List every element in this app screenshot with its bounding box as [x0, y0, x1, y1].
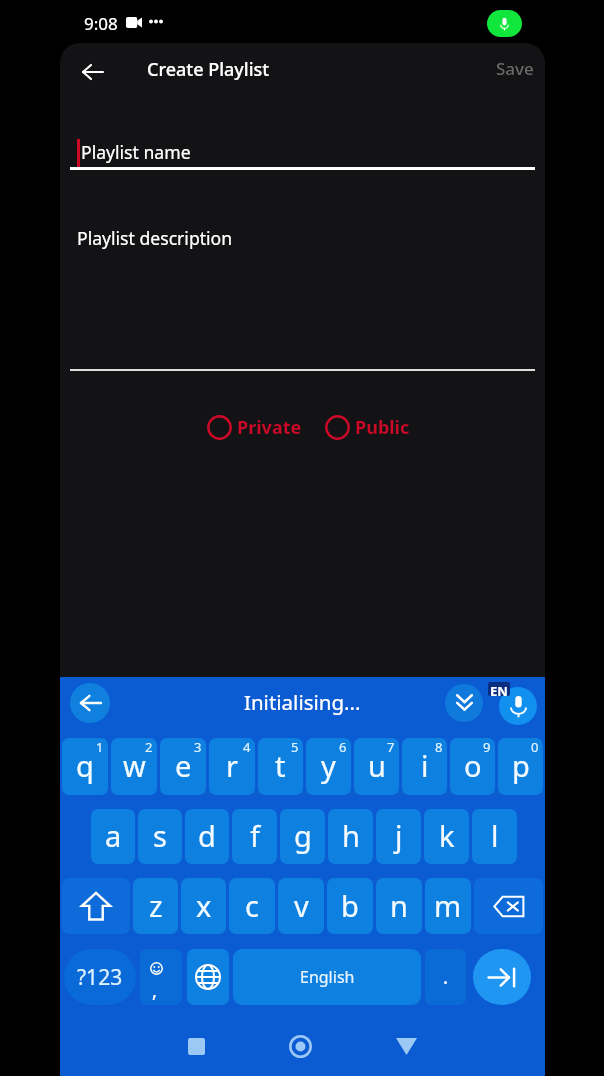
staticText: u	[368, 746, 386, 785]
staticText: o	[464, 746, 482, 785]
staticText: w	[123, 746, 146, 785]
button[interactable]: c	[229, 878, 275, 934]
button[interactable]: ?123	[64, 949, 136, 1005]
staticText: ,	[152, 977, 158, 1003]
button[interactable]: Emoji	[140, 949, 182, 1005]
staticText: .	[443, 964, 449, 990]
staticText: d	[198, 816, 216, 855]
button[interactable]: u	[354, 738, 399, 795]
staticText: t	[275, 746, 286, 785]
button[interactable]: l	[472, 809, 517, 864]
button[interactable]: Enter	[473, 949, 531, 1005]
button[interactable]: o	[450, 738, 495, 795]
button[interactable]: i	[402, 738, 447, 795]
button[interactable]: Back	[70, 683, 110, 723]
button[interactable]: Public	[325, 415, 410, 440]
button[interactable]: .	[425, 949, 466, 1005]
staticText: EN	[490, 682, 508, 696]
staticText: r	[226, 746, 238, 785]
staticText: s	[153, 816, 167, 855]
staticText: 7	[387, 738, 395, 756]
button[interactable]: v	[278, 878, 324, 934]
button[interactable]: d	[185, 809, 229, 864]
button[interactable]: h	[328, 809, 373, 864]
button[interactable]: b	[327, 878, 373, 934]
button[interactable]: p	[498, 738, 543, 795]
button[interactable]: Back	[383, 1023, 430, 1070]
staticText: 3	[194, 738, 202, 756]
button[interactable]: Voice input	[499, 687, 537, 725]
staticText: g	[294, 816, 312, 855]
staticText: f	[250, 816, 260, 855]
button[interactable]: Home	[277, 1023, 324, 1070]
button[interactable]: Shift	[62, 878, 130, 934]
staticText: q	[76, 746, 94, 785]
button[interactable]: j	[376, 809, 421, 864]
button[interactable]: n	[376, 878, 422, 934]
staticText: e	[175, 746, 192, 785]
staticText: p	[512, 746, 530, 785]
staticText: y	[321, 746, 336, 785]
button[interactable]: e	[160, 738, 206, 795]
staticText: 1	[96, 738, 104, 756]
staticText: 5	[291, 738, 299, 756]
staticText: Playlist description	[77, 226, 233, 250]
staticText: 9	[483, 738, 491, 756]
button[interactable]: Recents	[173, 1023, 220, 1070]
button[interactable]: Backspace	[474, 878, 543, 934]
staticText: v	[294, 886, 309, 925]
button[interactable]: Private	[207, 415, 302, 440]
staticText: x	[196, 886, 212, 925]
staticText: Private	[237, 415, 302, 440]
staticText: Playlist name	[81, 140, 191, 164]
staticText: l	[491, 816, 499, 855]
staticText: k	[439, 816, 455, 855]
button[interactable]: g	[280, 809, 325, 864]
button[interactable]: r	[209, 738, 255, 795]
staticText: 0	[531, 738, 539, 756]
staticText: Initialising...	[244, 688, 361, 716]
button[interactable]: q	[62, 738, 108, 795]
button[interactable]: f	[232, 809, 277, 864]
button[interactable]: m	[425, 878, 471, 934]
staticText: i	[421, 746, 429, 785]
staticText: 9:08	[84, 12, 118, 35]
staticText: h	[342, 816, 360, 855]
button[interactable]: s	[138, 809, 182, 864]
button[interactable]: English	[233, 949, 421, 1005]
staticText: a	[105, 816, 122, 855]
staticText: ?123	[77, 963, 123, 992]
staticText: c	[245, 886, 259, 925]
staticText: 4	[243, 738, 251, 756]
staticText: English	[300, 966, 355, 988]
staticText: z	[149, 886, 163, 925]
staticText: 8	[435, 738, 443, 756]
staticText: n	[390, 886, 408, 925]
staticText: Save	[496, 57, 534, 80]
staticText: m	[434, 886, 462, 925]
staticText: Create Playlist	[147, 57, 270, 82]
button[interactable]: Hide keyboard	[445, 684, 483, 722]
button[interactable]: t	[258, 738, 303, 795]
button[interactable]: w	[111, 738, 157, 795]
button[interactable]: Change language	[187, 949, 229, 1005]
button[interactable]: a	[91, 809, 135, 864]
staticText: 2	[145, 738, 153, 756]
staticText: 6	[339, 738, 347, 756]
button[interactable]: x	[181, 878, 226, 934]
button[interactable]: z	[133, 878, 178, 934]
staticText: b	[341, 886, 359, 925]
button[interactable]: Back	[70, 43, 114, 100]
staticText: Public	[355, 415, 410, 440]
button[interactable]: y	[306, 738, 351, 795]
button[interactable]: Save	[483, 44, 545, 99]
button[interactable]: k	[424, 809, 469, 864]
staticText: j	[395, 816, 403, 855]
